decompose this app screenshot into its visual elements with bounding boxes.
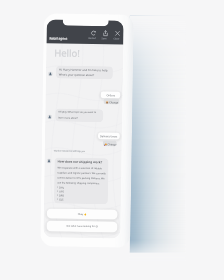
button[interactable]: Not what I was looking for 😕 — [46, 220, 118, 232]
staticText: Thanks! I think this will help you — [54, 149, 86, 153]
staticText: Close — [113, 37, 119, 40]
button[interactable]: 📦 Change — [103, 98, 119, 105]
staticText: Orders — [106, 93, 116, 97]
staticText: Alrighty! What topic do you want to lear… — [58, 110, 96, 120]
staticText: Restart — [88, 37, 96, 40]
button[interactable]: Okay 👍 — [47, 208, 118, 219]
button[interactable]: Delivery times — [98, 132, 120, 139]
staticText: Not what I was looking for 😕 — [66, 225, 98, 228]
staticText: Hello! — [54, 46, 80, 60]
button[interactable]: Orders — [100, 91, 121, 98]
staticText: DPD — [59, 194, 65, 197]
staticText: 🚚 Change — [104, 142, 117, 145]
staticText: Save — [101, 37, 107, 40]
button[interactable]: 🚚 Change — [103, 140, 117, 146]
staticText: Retail agent — [49, 36, 67, 41]
staticText: GLS — [59, 198, 64, 201]
staticText: Okay 👍 — [78, 213, 87, 216]
staticText: 📦 Change — [105, 100, 118, 103]
button[interactable]: Share — [102, 30, 109, 36]
button[interactable]: Restart — [90, 30, 97, 36]
staticText: Hi, Harry Hammer and I'm here to help. W… — [59, 68, 109, 77]
button[interactable]: Close — [114, 30, 121, 36]
staticText: Delivery times — [100, 134, 118, 138]
staticText: DHL — [59, 186, 65, 189]
staticText: How does our shipping work? — [57, 159, 103, 164]
staticText: UPS — [59, 190, 64, 193]
staticText: We cooperate with a selection of reliabl… — [57, 165, 106, 184]
